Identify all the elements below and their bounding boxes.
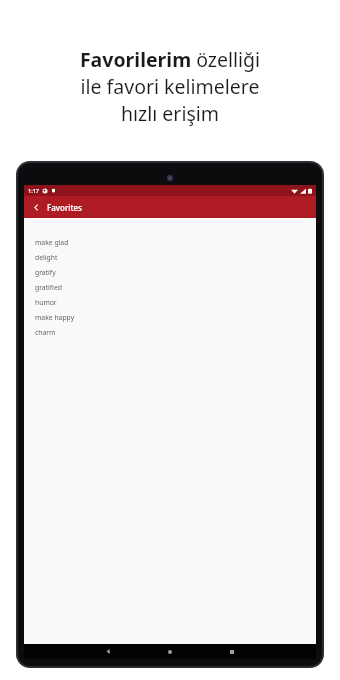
button[interactable]: make glad <box>24 235 316 250</box>
staticText: humor <box>35 298 57 307</box>
staticText: make happy <box>35 313 75 322</box>
staticText: gratify <box>35 268 56 277</box>
button[interactable]: humor <box>24 295 316 310</box>
button[interactable]: Back <box>77 644 139 659</box>
button[interactable]: make happy <box>24 310 316 325</box>
button[interactable]: Home <box>139 644 201 659</box>
staticText: 1:17 <box>28 187 39 194</box>
button[interactable]: gratified <box>24 280 316 295</box>
button[interactable]: gratify <box>24 265 316 280</box>
button[interactable]: delight <box>24 250 316 265</box>
button[interactable]: charm <box>24 325 316 340</box>
staticText: gratified <box>35 283 62 292</box>
staticText: Favorilerim özelliği ile favori kelimele… <box>18 46 322 127</box>
button[interactable]: Recents <box>201 644 263 659</box>
staticText: Favorites <box>47 202 82 213</box>
button[interactable]: Back <box>29 200 43 214</box>
staticText: charm <box>35 328 56 337</box>
staticText: make glad <box>35 238 69 247</box>
staticText: delight <box>35 253 58 262</box>
